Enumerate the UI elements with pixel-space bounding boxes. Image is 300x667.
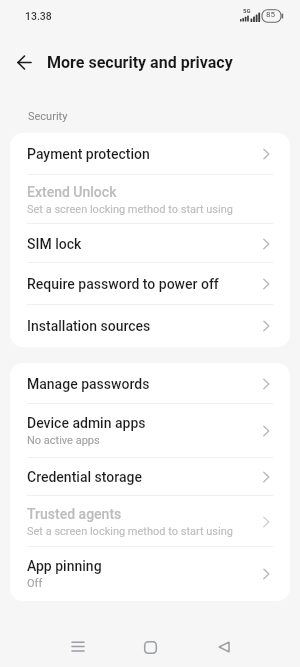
staticText: More security and privacy [47,53,233,72]
staticText: Off [27,577,43,590]
staticText: No active apps [27,434,100,447]
button[interactable]: SIM lock [10,224,290,263]
button[interactable] [132,629,168,665]
staticText: Require password to power off [27,276,219,292]
button[interactable]: Require password to power off [10,263,290,305]
button[interactable]: Manage passwords [10,363,290,404]
staticText: 13.38 [25,10,52,22]
staticText: Set a screen locking method to start usi… [27,525,233,538]
staticText: Set a screen locking method to start usi… [27,203,233,216]
button[interactable]: Trusted agents [10,496,290,547]
staticText: Manage passwords [27,376,150,392]
staticText: Payment protection [27,146,150,162]
button[interactable]: Credential storage [10,458,290,496]
button[interactable]: Extend Unlock [10,175,290,224]
staticText: Device admin apps [27,415,146,431]
button[interactable] [10,48,38,76]
staticText: Trusted agents [27,506,122,522]
staticText: Installation sources [27,318,151,334]
button[interactable]: Device admin apps [10,404,290,458]
button[interactable]: App pinning [10,547,290,601]
staticText: App pinning [27,558,102,574]
staticText: 5G [243,7,251,14]
button[interactable]: Installation sources [10,305,290,347]
button[interactable]: Payment protection [10,133,290,175]
staticText: Credential storage [27,469,142,485]
button[interactable] [60,629,96,665]
staticText: 85 [266,10,275,19]
staticText: SIM lock [27,236,82,252]
button[interactable] [206,629,242,665]
staticText: Security [28,110,68,123]
staticText: Extend Unlock [27,184,117,200]
